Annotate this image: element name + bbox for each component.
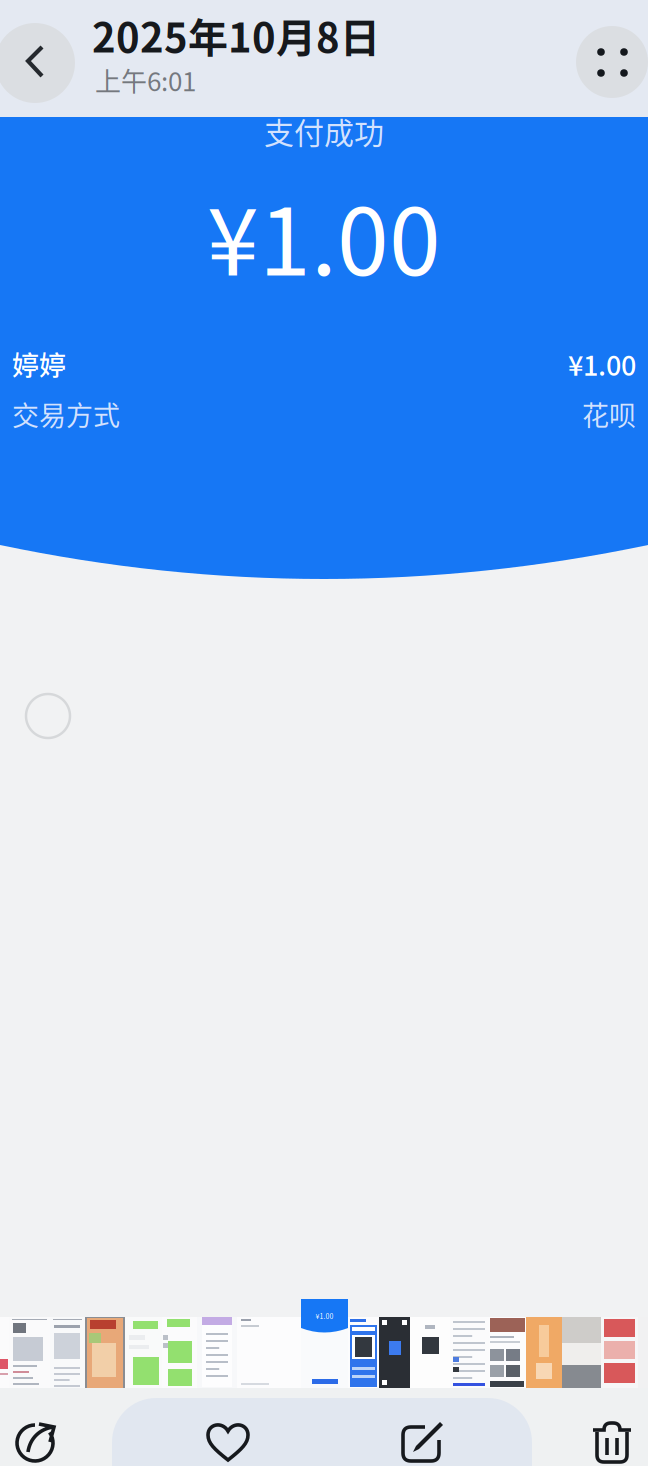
button[interactable]: Screenshot [9,1317,50,1389]
button[interactable]: Screenshot [197,1317,237,1389]
staticText: 交易方式 [12,394,120,434]
button[interactable]: Screenshot [50,1317,85,1389]
button[interactable]: Screenshot [379,1317,410,1389]
staticText: 上午6:01 [95,61,196,99]
button[interactable]: Screenshot [301,1317,348,1389]
button[interactable]: Screenshot [450,1317,489,1389]
button[interactable]: Current screenshot [301,1299,348,1334]
staticText: ¥1.00 [568,344,636,384]
button[interactable]: Screenshot [526,1317,562,1389]
button[interactable]: Screenshot [0,1317,9,1389]
button[interactable]: Delete [564,1403,648,1466]
button[interactable]: Screenshot [237,1317,301,1389]
button[interactable]: Favorite [180,1403,276,1466]
staticText: 婷婷 [12,344,66,384]
button[interactable]: Screenshot [410,1317,450,1389]
staticText: 花呗 [582,394,636,434]
button[interactable]: Share [0,1403,84,1466]
button[interactable]: Screenshot [489,1317,526,1389]
staticText: ¥1.00 [315,1311,333,1321]
button[interactable]: Screenshot [85,1317,125,1389]
staticText: ¥1.00 [207,168,441,302]
staticText: 2025年10月8日 [92,6,380,64]
button[interactable]: More [576,26,648,98]
button[interactable]: Screenshot [562,1317,601,1389]
button[interactable]: Screenshot [125,1317,162,1389]
staticText: 支付成功 [264,109,384,153]
button[interactable]: Screenshot [162,1317,197,1389]
button[interactable]: Back [0,23,75,103]
button[interactable]: Edit [373,1403,469,1466]
button[interactable]: Screenshot [348,1317,379,1389]
button[interactable]: Screenshot [601,1317,638,1389]
